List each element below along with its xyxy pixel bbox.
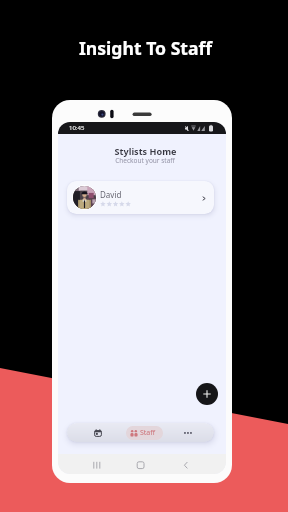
- staticText: Stylists Home: [65, 145, 226, 157]
- button[interactable]: David: [67, 181, 214, 214]
- button[interactable]: Staff: [126, 426, 163, 440]
- button[interactable]: Open David: [196, 191, 210, 205]
- other: System navigation: [58, 454, 226, 474]
- staticText: Insight To Staff: [79, 36, 213, 60]
- staticText: 10:45: [69, 124, 85, 132]
- staticText: Staff: [140, 428, 156, 438]
- button[interactable]: Schedule: [87, 423, 109, 442]
- button[interactable]: Add: [196, 383, 218, 405]
- staticText: Checkout your staff: [64, 156, 226, 165]
- button[interactable]: More options: [177, 423, 199, 442]
- staticText: David: [100, 189, 122, 200]
